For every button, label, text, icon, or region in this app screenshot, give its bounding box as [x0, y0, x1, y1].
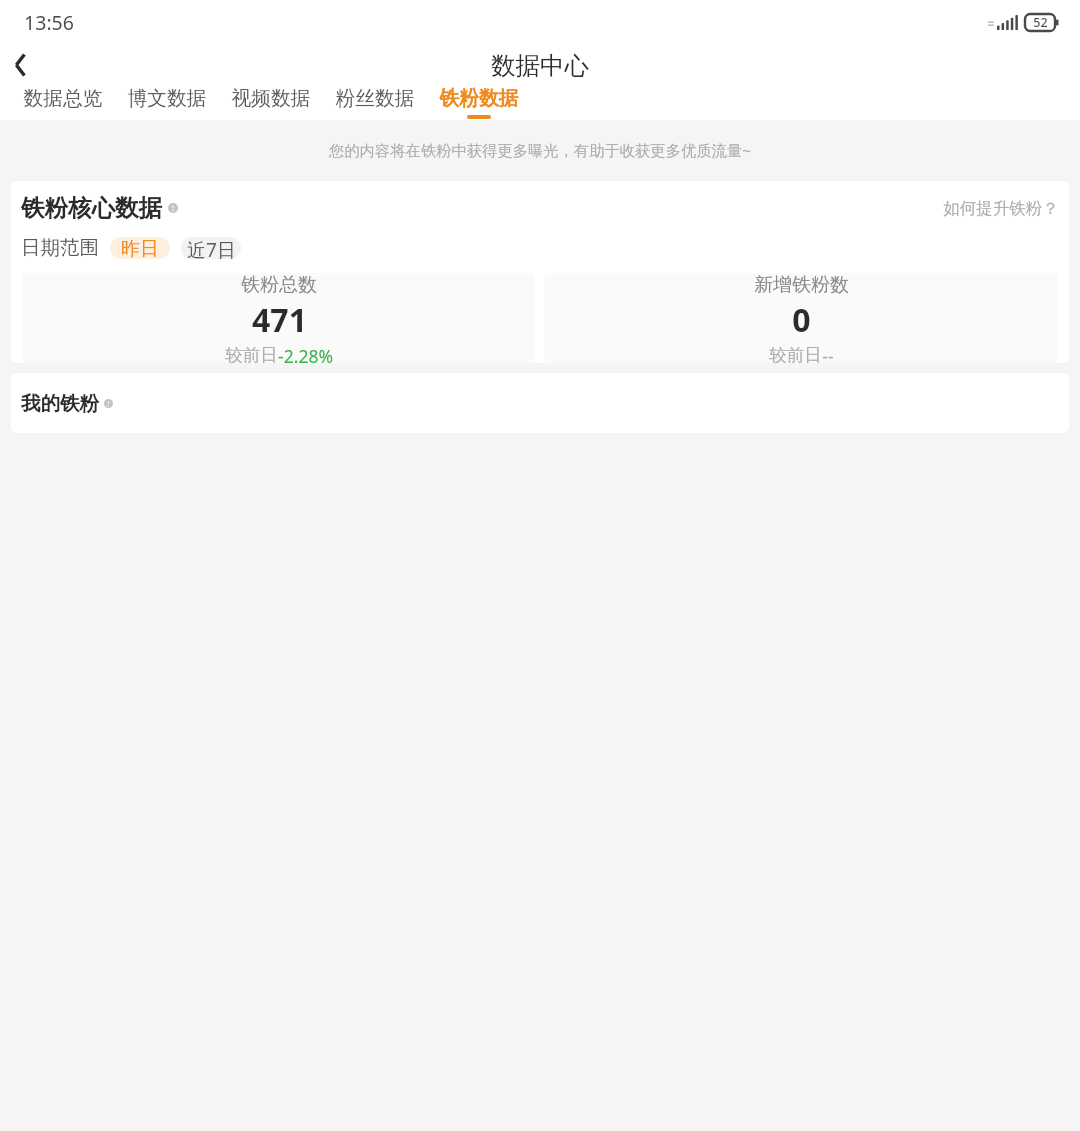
staticText: 铁粉数据: [439, 86, 519, 111]
staticText: 近7日: [187, 237, 236, 259]
button[interactable]: 铁粉总数: [22, 273, 535, 363]
staticText: 数据中心: [491, 50, 589, 81]
staticText: 您的内容将在铁粉中获得更多曝光，有助于收获更多优质流量~: [329, 140, 751, 161]
staticText: 52: [1033, 14, 1048, 31]
staticText: 如何提升铁粉？: [943, 198, 1059, 219]
button[interactable]: 视频数据: [219, 86, 323, 115]
staticText: 日期范围: [21, 235, 99, 260]
button[interactable]: 近7日: [181, 237, 241, 259]
button[interactable]: 博文数据: [115, 86, 219, 115]
staticText: 较前日: [225, 344, 278, 363]
staticText: 13:56: [24, 9, 74, 36]
staticText: 数据总览: [23, 86, 103, 111]
staticText: --: [822, 344, 834, 363]
staticText: 新增铁粉数: [754, 273, 849, 297]
staticText: 博文数据: [127, 86, 207, 111]
staticText: 粉丝数据: [335, 86, 415, 111]
staticText: 较前日: [769, 344, 822, 363]
staticText: 铁粉核心数据: [21, 193, 162, 223]
staticText: 昨日: [121, 237, 159, 259]
staticText: -2.28%: [278, 344, 333, 363]
button[interactable]: 新增铁粉数: [544, 273, 1058, 363]
staticText: 铁粉总数: [241, 273, 317, 297]
button[interactable]: 粉丝数据: [323, 86, 427, 115]
staticText: 0: [792, 298, 811, 342]
button[interactable]: 如何提升铁粉？: [943, 198, 1059, 219]
staticText: 视频数据: [231, 86, 311, 111]
staticText: 471: [252, 298, 307, 342]
button[interactable]: Back: [0, 44, 40, 86]
button[interactable]: 数据总览: [11, 86, 115, 115]
button[interactable]: 昨日: [110, 237, 170, 259]
staticText: 我的铁粉: [21, 391, 99, 416]
button[interactable]: 铁粉数据: [427, 86, 531, 119]
